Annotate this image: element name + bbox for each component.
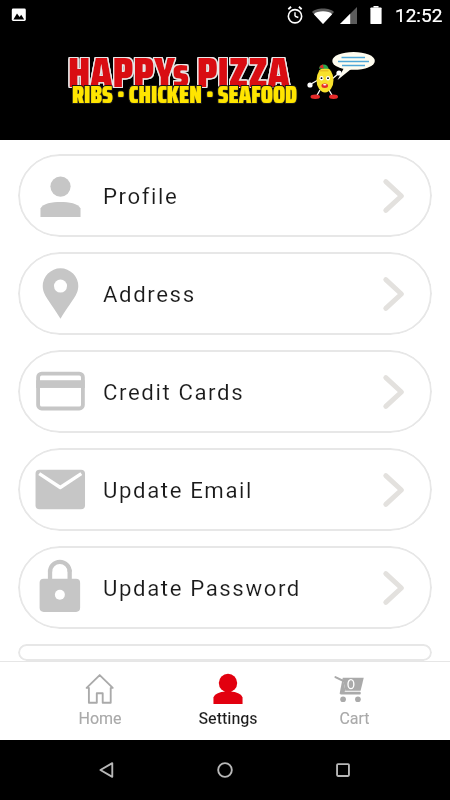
- staticText: RIBS • CHICKEN • SEAFOOD: [71, 76, 297, 114]
- staticText: HAPPYs PIZZA: [67, 38, 289, 106]
- button[interactable]: Update Password: [18, 546, 432, 629]
- other: Back: [96, 759, 118, 781]
- button[interactable]: Cart: [291, 662, 418, 740]
- staticText: Home: [78, 709, 122, 728]
- staticText: HAPPYs PIZZA: [69, 39, 291, 107]
- staticText: 12:52: [395, 4, 443, 26]
- button[interactable]: Credit Cards: [18, 350, 432, 433]
- other: Home: [214, 759, 236, 781]
- staticText: HAPPYs PIZZA: [69, 37, 291, 105]
- staticText: Cart: [339, 709, 370, 728]
- staticText: RIBS • CHICKEN • SEAFOOD: [72, 75, 298, 113]
- staticText: Update Email: [103, 477, 254, 503]
- button[interactable]: Address: [18, 252, 432, 335]
- staticText: RIBS • CHICKEN • SEAFOOD: [71, 77, 297, 115]
- staticText: Settings: [198, 709, 258, 728]
- staticText: HAPPYs PIZZA: [68, 39, 290, 107]
- staticText: RIBS • CHICKEN • SEAFOOD: [71, 75, 297, 113]
- staticText: HAPPYs PIZZA: [67, 39, 289, 107]
- staticText: RIBS • CHICKEN • SEAFOOD: [72, 77, 298, 115]
- button[interactable]: [18, 644, 432, 661]
- staticText: Address: [103, 281, 196, 307]
- staticText: RIBS • CHICKEN • SEAFOOD: [73, 77, 299, 115]
- staticText: HAPPYs PIZZA: [69, 38, 291, 106]
- staticText: RIBS • CHICKEN • SEAFOOD: [72, 76, 298, 114]
- staticText: RIBS • CHICKEN • SEAFOOD: [73, 75, 299, 113]
- other: Recents: [332, 759, 354, 781]
- staticText: Profile: [103, 183, 179, 209]
- staticText: HAPPYs PIZZA: [67, 37, 289, 105]
- button[interactable]: Settings: [164, 662, 291, 740]
- button[interactable]: Profile: [18, 154, 432, 237]
- staticText: HAPPYs PIZZA: [68, 37, 290, 105]
- staticText: HAPPYs PIZZA: [68, 38, 290, 106]
- button[interactable]: Home: [36, 662, 164, 740]
- staticText: Credit Cards: [103, 379, 245, 405]
- button[interactable]: Update Email: [18, 448, 432, 531]
- staticText: Update Password: [103, 575, 301, 601]
- staticText: RIBS • CHICKEN • SEAFOOD: [73, 76, 299, 114]
